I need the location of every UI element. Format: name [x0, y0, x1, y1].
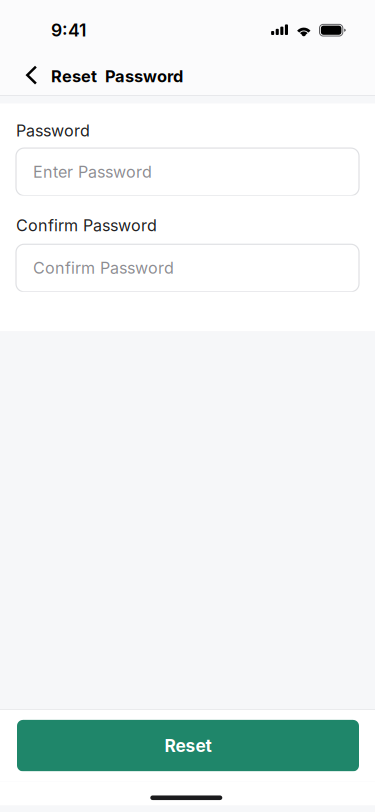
staticText: Enter Password	[33, 162, 152, 182]
button[interactable]: Confirm Password	[16, 244, 359, 292]
staticText: 9:41	[51, 20, 86, 41]
staticText: Reset	[164, 735, 211, 756]
button[interactable]: Back	[0, 53, 51, 97]
staticText: Password	[16, 121, 90, 140]
button[interactable]: Reset	[17, 720, 359, 771]
staticText: Confirm Password	[16, 216, 157, 235]
button[interactable]: Enter Password	[16, 148, 359, 196]
staticText: Reset Password	[51, 66, 183, 86]
staticText: Confirm Password	[33, 258, 174, 278]
